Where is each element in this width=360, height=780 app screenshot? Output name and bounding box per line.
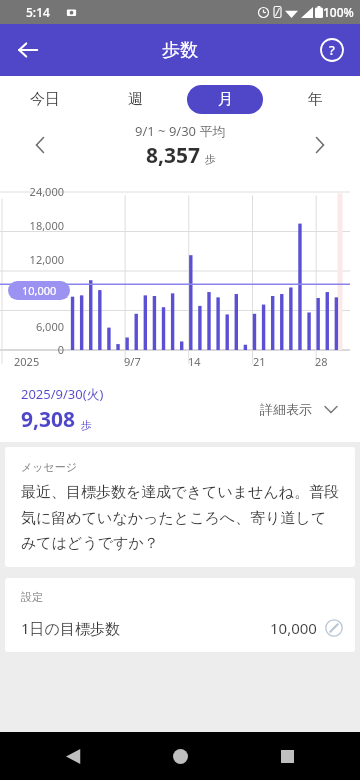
staticText: 10,000 [22, 283, 57, 298]
staticText: 24,000 [0, 184, 64, 199]
staticText: メッセージ [21, 460, 78, 474]
button[interactable]: 詳細表示 [254, 395, 344, 423]
staticText: 設定 [21, 590, 43, 604]
button[interactable]: Previous [24, 129, 56, 161]
button[interactable]: Home [163, 739, 197, 773]
button[interactable]: 今日 [7, 85, 83, 114]
staticText: 14 [188, 354, 201, 369]
staticText: 21 [253, 354, 266, 369]
button[interactable]: Next [304, 129, 336, 161]
staticText: 10,000 [270, 618, 317, 638]
staticText: 最近、目標歩数を達成できていませんね。普段気に留めていなかったところへ、寄り道し… [21, 483, 341, 552]
staticText: 100% [323, 4, 354, 20]
staticText: 28 [315, 354, 328, 369]
button[interactable]: 年 [277, 85, 353, 114]
button[interactable]: Back [8, 30, 48, 70]
staticText: 歩数 [162, 39, 198, 62]
staticText: 今日 [30, 90, 60, 109]
staticText: ? [329, 41, 335, 59]
staticText: 月 [218, 90, 233, 109]
button[interactable]: Help [312, 30, 352, 70]
button[interactable]: Back [56, 739, 90, 773]
staticText: 2025 [14, 354, 40, 369]
staticText: 9/1 ~ 9/30 平均 [135, 122, 226, 140]
staticText: 1日の目標歩数 [21, 618, 270, 638]
other: Edit goal [325, 619, 343, 637]
staticText: 12,000 [0, 252, 64, 267]
staticText: 詳細表示 [260, 401, 312, 417]
staticText: 週 [128, 90, 143, 109]
button[interactable]: メッセージ [5, 447, 355, 567]
staticText: 歩 [81, 418, 92, 432]
staticText: 8,357 [146, 141, 201, 168]
staticText: 2025/9/30(火) [21, 385, 104, 403]
staticText: 6,000 [0, 319, 64, 334]
staticText: 0 [0, 342, 64, 357]
button[interactable]: 週 [97, 85, 173, 114]
button[interactable]: 月 [187, 85, 263, 114]
staticText: 18,000 [0, 218, 64, 233]
staticText: 5:14 [26, 4, 50, 20]
staticText: 年 [308, 90, 323, 109]
staticText: 9,308 [21, 405, 76, 434]
staticText: 歩 [205, 152, 216, 166]
button[interactable]: Recents [270, 739, 304, 773]
staticText: 9/7 [124, 354, 141, 369]
button[interactable]: 1日の目標歩数 [21, 618, 343, 638]
